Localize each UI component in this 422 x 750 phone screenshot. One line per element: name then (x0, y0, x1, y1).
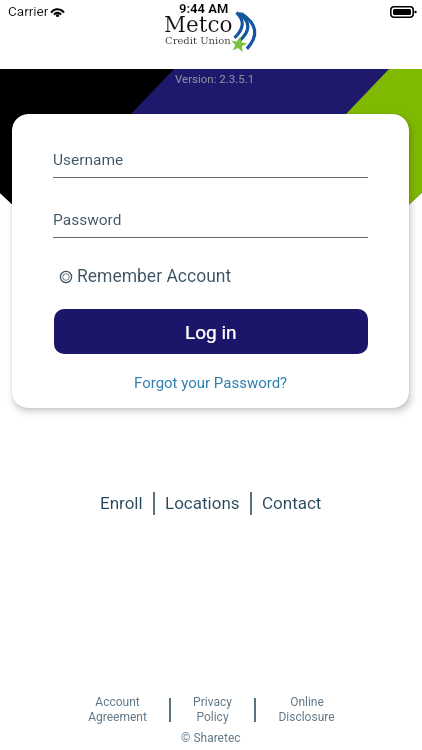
staticText: © Sharetec (181, 731, 241, 745)
staticText: Locations (165, 493, 240, 513)
staticText: Contact (262, 493, 322, 513)
staticText: Disclosure (278, 710, 335, 724)
other: Battery full (390, 6, 414, 18)
button[interactable]: Password (53, 211, 368, 238)
button[interactable]: Remember Account (59, 266, 232, 287)
staticText: Account (95, 695, 140, 709)
button[interactable]: Privacy (171, 695, 254, 724)
staticText: 9:44 AM (179, 1, 229, 16)
button[interactable]: Username (53, 151, 368, 178)
staticText: Log in (185, 321, 237, 343)
staticText: Agreement (88, 710, 147, 724)
other: Wifi signal (50, 5, 65, 18)
button[interactable]: Account (66, 695, 169, 724)
staticText: Password (53, 211, 122, 229)
staticText: Forgot your Password? (134, 374, 288, 392)
staticText: Remember Account (77, 266, 232, 287)
staticText: Privacy (193, 695, 232, 709)
staticText: Username (53, 151, 124, 169)
button[interactable]: Online (256, 695, 357, 724)
button[interactable]: Enroll (90, 489, 153, 517)
button[interactable]: Forgot your Password? (128, 371, 294, 395)
staticText: Credit Union (165, 35, 231, 47)
button[interactable]: Contact (252, 489, 332, 517)
button[interactable]: Locations (155, 489, 250, 517)
staticText: Enroll (100, 493, 143, 513)
staticText: Metco (164, 12, 233, 37)
staticText: Online (290, 695, 324, 709)
staticText: Policy (196, 710, 229, 724)
staticText: Carrier (8, 3, 49, 19)
button[interactable]: Log in (54, 309, 368, 354)
staticText: Version: 2.3.5.1 (175, 72, 255, 85)
